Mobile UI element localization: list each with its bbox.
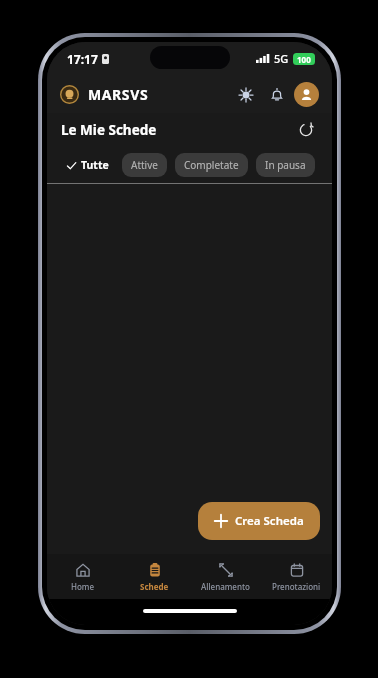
button[interactable]: Completate	[175, 153, 248, 177]
button[interactable]: Prenotazioni	[261, 558, 332, 596]
button[interactable]: Crea Scheda	[198, 502, 320, 540]
staticText: Completate	[184, 158, 239, 172]
staticText: 5G	[274, 51, 289, 66]
button[interactable]: Notifications	[263, 81, 290, 108]
button[interactable]: Schede	[119, 558, 190, 596]
staticText: Home	[71, 581, 95, 592]
staticText: In pausa	[265, 158, 306, 172]
staticText: MARSVS	[88, 85, 149, 104]
button[interactable]: Profile	[294, 82, 319, 107]
button[interactable]: Toggle light theme	[232, 81, 259, 108]
button[interactable]: Home	[47, 558, 119, 596]
button[interactable]: Attive	[122, 153, 167, 177]
staticText: Le Mie Schede	[61, 121, 157, 139]
button[interactable]: In pausa	[256, 153, 315, 177]
staticText: Allenamento	[201, 581, 250, 592]
staticText: Prenotazioni	[272, 581, 321, 592]
staticText: Schede	[140, 581, 169, 592]
button[interactable]: Refresh	[294, 118, 318, 142]
button[interactable]: Tutte	[63, 153, 113, 177]
staticText: 100	[297, 54, 311, 65]
staticText: Tutte	[81, 158, 109, 172]
button[interactable]: Allenamento	[190, 558, 261, 596]
staticText: 17:17	[67, 51, 98, 67]
staticText: Crea Scheda	[235, 513, 304, 529]
staticText: Attive	[131, 158, 158, 172]
